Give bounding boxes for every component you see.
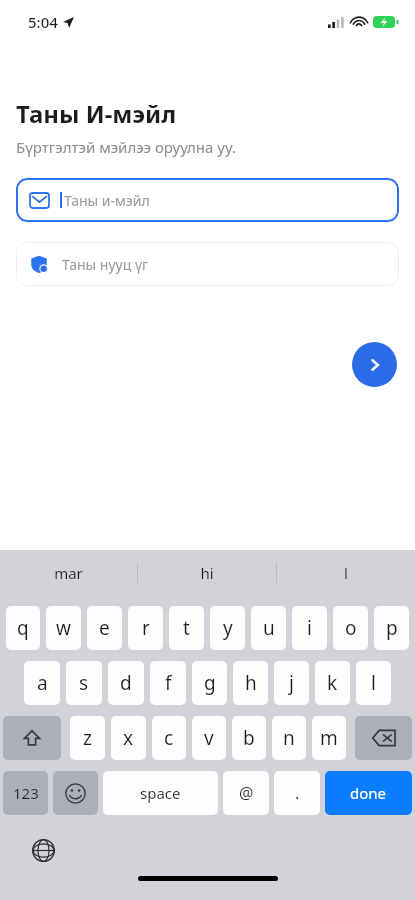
button[interactable]: l bbox=[356, 661, 391, 705]
staticText: p bbox=[386, 615, 398, 641]
staticText: r bbox=[142, 615, 150, 641]
button[interactable]: mar bbox=[0, 550, 137, 596]
staticText: o bbox=[345, 615, 357, 641]
button[interactable]: Next bbox=[352, 342, 397, 387]
staticText: i bbox=[307, 615, 312, 641]
staticText: . bbox=[295, 782, 300, 804]
button[interactable]: Change keyboard bbox=[30, 837, 56, 863]
button[interactable]: i bbox=[292, 606, 327, 650]
button[interactable]: h bbox=[233, 661, 268, 705]
button[interactable]: g bbox=[192, 661, 227, 705]
staticText: x bbox=[123, 725, 134, 751]
button[interactable]: e bbox=[87, 606, 122, 650]
button[interactable]: m bbox=[312, 716, 346, 760]
staticText: j bbox=[289, 670, 294, 696]
button[interactable]: Backspace bbox=[355, 716, 412, 760]
staticText: n bbox=[283, 725, 295, 751]
button[interactable]: o bbox=[333, 606, 368, 650]
staticText: q bbox=[17, 615, 29, 641]
button[interactable]: @ bbox=[223, 771, 269, 815]
staticText: Таны нууц үг bbox=[62, 255, 149, 274]
staticText: Таны И-мэйл bbox=[16, 97, 177, 130]
button[interactable]: done bbox=[325, 771, 412, 815]
button[interactable]: v bbox=[192, 716, 226, 760]
staticText: mar bbox=[54, 563, 83, 583]
staticText: s bbox=[79, 670, 89, 696]
button[interactable]: a bbox=[24, 661, 60, 705]
button[interactable]: c bbox=[152, 716, 186, 760]
button[interactable]: Emoji bbox=[53, 771, 98, 815]
staticText: k bbox=[327, 670, 338, 696]
button[interactable]: p bbox=[374, 606, 409, 650]
staticText: t bbox=[183, 615, 190, 641]
staticText: c bbox=[164, 725, 174, 751]
staticText: Таны и-мэйл bbox=[64, 191, 150, 210]
staticText: done bbox=[350, 783, 387, 803]
staticText: @ bbox=[239, 782, 254, 804]
staticText: v bbox=[204, 725, 214, 751]
staticText: w bbox=[56, 615, 71, 641]
staticText: g bbox=[204, 670, 216, 696]
button[interactable]: Таны и-мэйл bbox=[16, 178, 399, 222]
button[interactable]: Shift bbox=[3, 716, 61, 760]
staticText: y bbox=[223, 615, 233, 641]
button[interactable]: s bbox=[66, 661, 102, 705]
button[interactable]: x bbox=[111, 716, 146, 760]
staticText: a bbox=[37, 670, 48, 696]
staticText: d bbox=[120, 670, 132, 696]
button[interactable]: t bbox=[169, 606, 204, 650]
staticText: z bbox=[83, 725, 92, 751]
button[interactable]: w bbox=[46, 606, 81, 650]
staticText: Бүртгэлтэй мэйлээ оруулна уу. bbox=[16, 137, 236, 157]
button[interactable]: l bbox=[277, 550, 415, 596]
staticText: 5:04 bbox=[28, 12, 58, 32]
button[interactable]: u bbox=[251, 606, 286, 650]
staticText: h bbox=[245, 670, 257, 696]
staticText: u bbox=[263, 615, 275, 641]
button[interactable]: r bbox=[128, 606, 163, 650]
button[interactable]: f bbox=[150, 661, 186, 705]
staticText: hi bbox=[200, 563, 214, 583]
button[interactable]: d bbox=[108, 661, 144, 705]
button[interactable]: j bbox=[274, 661, 309, 705]
staticText: 123 bbox=[13, 783, 39, 803]
button[interactable]: . bbox=[274, 771, 320, 815]
button[interactable]: space bbox=[103, 771, 218, 815]
staticText: l bbox=[371, 670, 376, 696]
staticText: m bbox=[320, 725, 338, 751]
button[interactable]: y bbox=[210, 606, 245, 650]
button[interactable]: q bbox=[6, 606, 40, 650]
staticText: e bbox=[99, 615, 110, 641]
staticText: l bbox=[344, 563, 348, 583]
button[interactable]: n bbox=[272, 716, 306, 760]
staticText: f bbox=[165, 670, 172, 696]
staticText: b bbox=[243, 725, 255, 751]
staticText: space bbox=[140, 783, 181, 803]
button[interactable]: z bbox=[70, 716, 105, 760]
button[interactable]: b bbox=[232, 716, 266, 760]
button[interactable]: k bbox=[315, 661, 350, 705]
button[interactable]: hi bbox=[138, 550, 276, 596]
button[interactable]: 123 bbox=[3, 771, 48, 815]
button[interactable]: Таны нууц үг bbox=[16, 242, 399, 286]
